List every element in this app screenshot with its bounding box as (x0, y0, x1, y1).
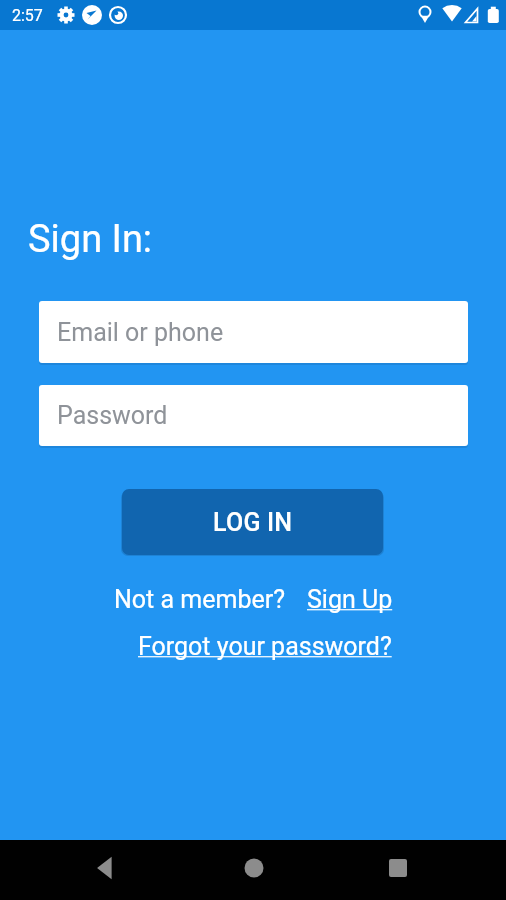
staticText: Email or phone (57, 318, 224, 347)
button[interactable]: Forgot your password? (138, 632, 392, 661)
staticText: Sign In: (28, 217, 153, 262)
button[interactable] (384, 854, 412, 882)
button[interactable]: Sign Up (307, 585, 393, 614)
staticText: Password (57, 401, 168, 430)
staticText: Not a member? (114, 585, 285, 614)
staticText: LOG IN (213, 508, 293, 537)
button[interactable]: Password (39, 385, 468, 446)
button[interactable]: LOG IN (122, 489, 383, 555)
button[interactable] (240, 854, 268, 882)
button[interactable] (92, 854, 120, 882)
staticText: 2:57 (12, 6, 43, 25)
button[interactable]: Email or phone (39, 301, 468, 363)
